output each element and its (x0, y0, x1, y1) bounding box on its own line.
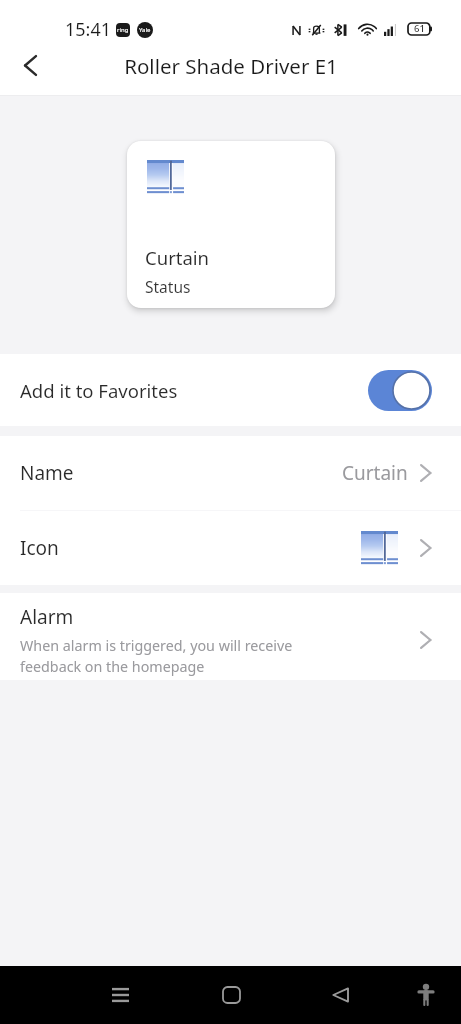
staticText: 61 (414, 22, 425, 35)
button[interactable]: Name (0, 436, 461, 510)
button[interactable]: Curtain (127, 141, 335, 308)
staticText: Curtain (342, 460, 408, 486)
button[interactable]: Recent apps (96, 971, 144, 1019)
staticText: 15:41 (65, 17, 112, 42)
staticText: Alarm (20, 604, 74, 630)
staticText: Icon (20, 535, 59, 561)
button[interactable]: Back (8, 45, 52, 86)
button[interactable]: Back (316, 971, 364, 1019)
button[interactable]: Alarm (0, 593, 461, 680)
staticText: Curtain (145, 245, 210, 270)
staticText: Add it to Favorites (20, 378, 178, 403)
button[interactable]: Accessibility menu (402, 971, 450, 1019)
staticText: Status (145, 276, 191, 297)
button[interactable]: Add it to Favorites toggle (368, 370, 432, 411)
button[interactable]: Icon (0, 511, 461, 585)
staticText: Yale (139, 26, 151, 34)
button[interactable]: Home (207, 971, 255, 1019)
staticText: ring (117, 26, 129, 34)
staticText: Name (20, 460, 74, 486)
staticText: Roller Shade Driver E1 (124, 52, 338, 80)
button[interactable]: Add it to Favorites (0, 354, 461, 426)
staticText: When alarm is triggered, you will receiv… (20, 636, 293, 676)
